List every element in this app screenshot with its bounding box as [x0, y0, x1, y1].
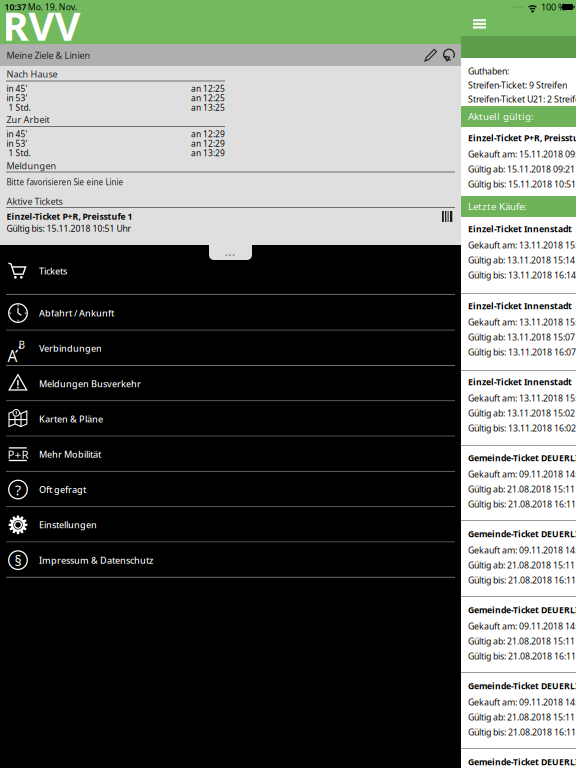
staticText: Einzel-Ticket Innenstadt: [468, 223, 572, 235]
staticText: Streifen-Ticket U21: 2 Streifen: [468, 93, 576, 105]
staticText: Gültig bis: 21.08.2018 16:11: [468, 574, 576, 586]
staticText: Zur Arbeit: [6, 113, 49, 125]
staticText: in 53': [6, 138, 27, 149]
staticText: Impressum & Datenschutz: [39, 554, 153, 566]
button[interactable]: Verbindungen: [0, 331, 461, 366]
staticText: Bitte favorisieren Sie eine Linie: [6, 177, 123, 188]
staticText: Gültig bis: 21.08.2018 16:11: [468, 498, 576, 510]
staticText: Gekauft am: 09.11.2018 14:55: [468, 468, 576, 480]
staticText: 1 Std.: [6, 102, 30, 113]
staticText: Gekauft am: 13.11.2018 15:14: [468, 239, 576, 251]
staticText: Gekauft am: 09.11.2018 14:55: [468, 696, 576, 708]
button[interactable]: Meldungen Busverkehr: [0, 366, 461, 401]
staticText: 10:37: [5, 1, 27, 13]
staticText: Gekauft am: 09.11.2018 14:55: [468, 620, 576, 632]
staticText: Gemeinde-Ticket DEUERLING: [468, 604, 576, 616]
staticText: Gemeinde-Ticket DEUERLING: [468, 756, 576, 768]
staticText: Einzel-Ticket Innenstadt: [468, 376, 572, 388]
staticText: Aktuell gültig:: [468, 110, 534, 123]
staticText: Nach Hause: [6, 68, 57, 80]
staticText: Gekauft am: 15.11.2018 09:21: [468, 148, 576, 160]
staticText: Gültig ab: 15.11.2018 09:21: [468, 163, 575, 175]
staticText: Einzel-Ticket Innenstadt: [468, 300, 572, 312]
staticText: 100 %: [541, 1, 566, 13]
staticText: Gültig bis: 21.08.2018 16:11: [468, 650, 576, 662]
staticText: an 13:29: [191, 147, 225, 159]
staticText: Mo. 19. Nov.: [28, 1, 77, 13]
staticText: Gültig bis: 13.11.2018 16:02: [468, 422, 576, 434]
staticText: Tickets: [39, 265, 67, 277]
staticText: Gültig ab: 21.08.2018 15:11: [468, 711, 575, 723]
staticText: §: [14, 551, 21, 570]
staticText: Meldungen: [6, 159, 56, 172]
staticText: an 13:25: [191, 102, 225, 113]
staticText: Streifen-Ticket: 9 Streifen: [468, 79, 567, 91]
staticText: Einzel-Ticket P+R, Preisstufe 1: [468, 132, 576, 144]
button[interactable]: Karten & Pläne: [0, 401, 461, 437]
staticText: B: [19, 338, 26, 352]
button[interactable]: Einstellungen: [0, 507, 461, 542]
staticText: an 12:25: [191, 92, 225, 104]
staticText: Gekauft am: 13.11.2018 15:14: [468, 392, 576, 404]
button[interactable]: Menu: [473, 18, 487, 29]
staticText: Guthaben:: [468, 65, 509, 77]
button[interactable]: Abfahrt / Ankunft: [0, 295, 461, 331]
staticText: Abfahrt / Ankunft: [39, 307, 114, 319]
staticText: Gemeinde-Ticket DEUERLING: [468, 528, 576, 540]
staticText: Mehr Mobilität: [39, 448, 101, 460]
staticText: Gemeinde-Ticket DEUERLING: [468, 680, 576, 692]
staticText: Meine Ziele & Linien: [6, 49, 90, 61]
staticText: Gültig bis: 15.11.2018 10:51: [468, 178, 576, 190]
staticText: an 12:29: [191, 128, 225, 140]
staticText: Gültig bis: 21.08.2018 16:11: [468, 726, 576, 738]
staticText: Gültig ab: 21.08.2018 15:11: [468, 559, 575, 571]
staticText: Gemeinde-Ticket DEUERLING: [468, 452, 576, 464]
staticText: RVV: [2, 0, 80, 52]
staticText: Gekauft am: 13.11.2018 15:14: [468, 316, 576, 328]
staticText: Einstellungen: [39, 519, 97, 531]
staticText: an 12:25: [191, 83, 225, 94]
staticText: Verbindungen: [39, 342, 102, 354]
staticText: in 53': [6, 92, 27, 104]
staticText: Karten & Pläne: [39, 413, 103, 425]
staticText: Gültig ab: 13.11.2018 15:14: [468, 254, 575, 266]
staticText: P+R: [7, 446, 28, 462]
staticText: Letzte Käufe:: [468, 200, 527, 213]
button[interactable]: Mehr Mobilität: [0, 437, 461, 472]
staticText: an 12:29: [191, 138, 225, 149]
staticText: Gültig ab: 21.08.2018 15:11: [468, 483, 575, 495]
staticText: Gültig ab: 13.11.2018 15:07: [468, 331, 575, 343]
staticText: ?: [15, 480, 21, 499]
button[interactable]: Expand: [209, 240, 252, 260]
staticText: 1 Std.: [6, 147, 30, 159]
staticText: in 45': [6, 128, 27, 140]
staticText: in 45': [6, 83, 27, 94]
staticText: Gültig ab: 13.11.2018 15:02: [468, 407, 575, 419]
button[interactable]: Oft gefragt: [0, 472, 461, 507]
staticText: Oft gefragt: [39, 483, 86, 496]
staticText: Aktive Tickets: [6, 195, 62, 207]
button[interactable]: Impressum & Datenschutz: [0, 542, 461, 578]
staticText: A: [8, 345, 18, 366]
button[interactable]: Tickets: [0, 247, 461, 295]
staticText: Meldungen Busverkehr: [39, 377, 141, 390]
staticText: Gültig bis: 13.11.2018 16:14: [468, 269, 576, 281]
staticText: Gekauft am: 09.11.2018 14:55: [468, 544, 576, 556]
staticText: Gültig bis: 15.11.2018 10:51 Uhr: [6, 223, 131, 234]
staticText: Einzel-Ticket P+R, Preisstufe 1: [6, 211, 132, 222]
staticText: Gültig ab: 21.08.2018 15:11: [468, 635, 575, 647]
staticText: Gültig bis: 13.11.2018 16:07: [468, 346, 576, 358]
